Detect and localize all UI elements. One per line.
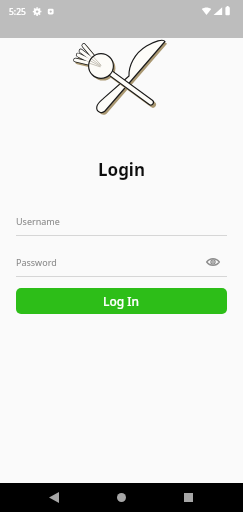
staticText: 5:25 (9, 6, 26, 18)
staticText: Password (16, 256, 209, 268)
staticText: Login (0, 158, 243, 181)
button[interactable]: Home (101, 483, 141, 512)
staticText: Log In (103, 293, 140, 309)
staticText: Username (16, 215, 227, 227)
button[interactable]: Recents (168, 483, 208, 512)
button[interactable]: Back (34, 483, 74, 512)
button[interactable]: Show password (204, 253, 222, 271)
button[interactable]: Log In (16, 288, 227, 314)
